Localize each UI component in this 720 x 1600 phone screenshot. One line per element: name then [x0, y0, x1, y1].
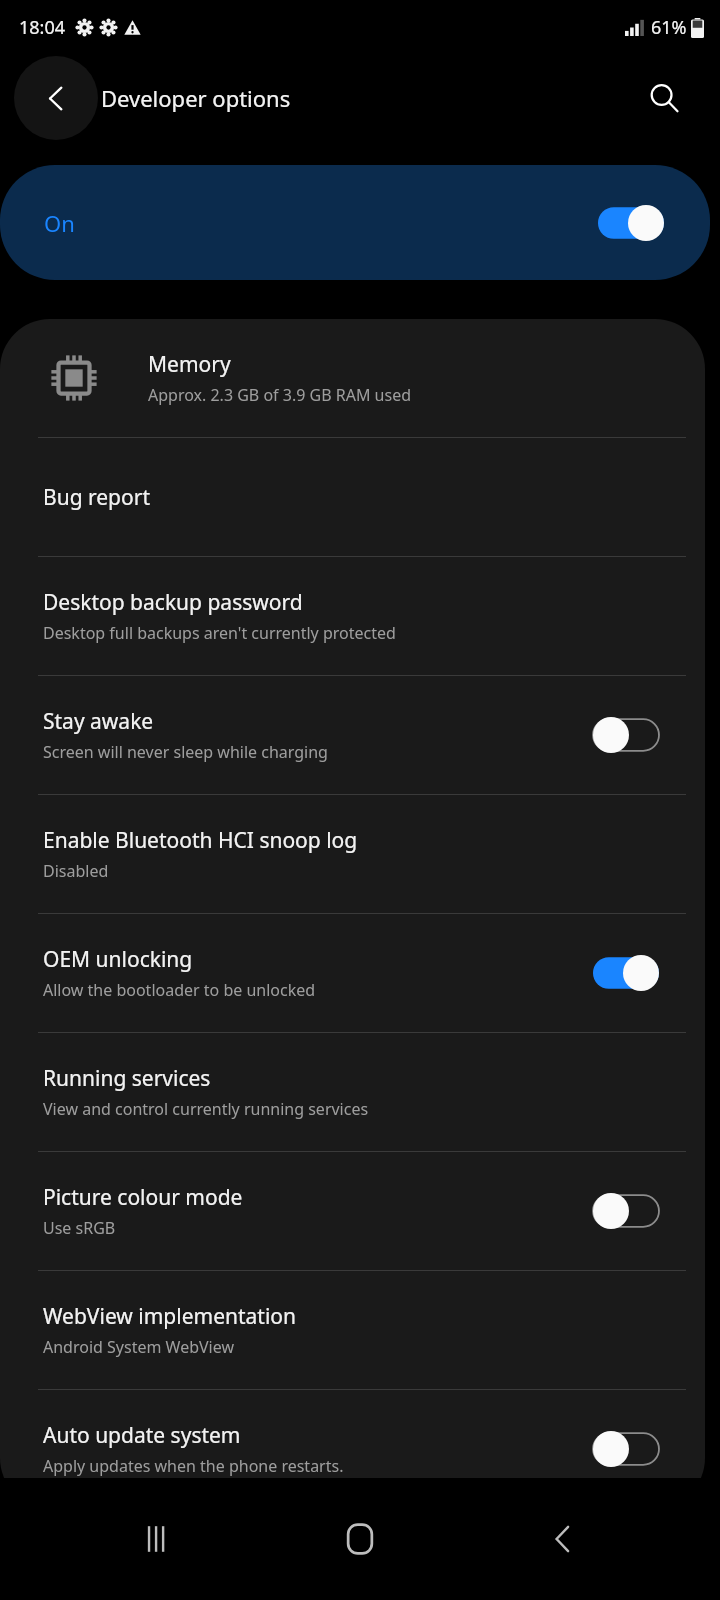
staticText: Apply updates when the phone restarts.	[43, 1455, 344, 1477]
staticText: Approx. 2.3 GB of 3.9 GB RAM used	[148, 384, 411, 406]
button[interactable]	[593, 717, 659, 753]
button[interactable]: Auto update system	[0, 1390, 705, 1508]
staticText: Desktop full backups aren't currently pr…	[43, 622, 396, 644]
staticText: Android System WebView	[43, 1336, 235, 1358]
staticText: 18:04	[19, 15, 66, 40]
staticText: Desktop backup password	[43, 588, 303, 617]
staticText: Use sRGB	[43, 1217, 116, 1239]
staticText: Allow the bootloader to be unlocked	[43, 979, 316, 1001]
staticText: Stay awake	[43, 707, 154, 736]
button[interactable]: Recent apps	[113, 1494, 203, 1584]
staticText: Auto update system	[43, 1421, 241, 1450]
staticText: WebView implementation	[43, 1302, 297, 1331]
button[interactable]: OEM unlocking	[0, 914, 705, 1032]
button[interactable]: On	[0, 165, 710, 280]
staticText: Enable Bluetooth HCI snoop log	[43, 826, 358, 855]
button[interactable]: Picture colour mode	[0, 1152, 705, 1270]
button[interactable]	[598, 205, 664, 241]
button[interactable]	[593, 1193, 659, 1229]
button[interactable]: WebView implementation	[0, 1271, 705, 1389]
staticText: View and control currently running servi…	[43, 1098, 369, 1120]
button[interactable]: Search	[636, 70, 692, 126]
staticText: Memory	[148, 350, 231, 379]
staticText: Developer options	[101, 83, 291, 113]
button[interactable]: Back	[518, 1494, 608, 1584]
button[interactable]: Back	[14, 56, 98, 140]
staticText: OEM unlocking	[43, 945, 193, 974]
button[interactable]: Running services	[0, 1033, 705, 1151]
staticText: Picture colour mode	[43, 1183, 243, 1212]
staticText: Screen will never sleep while charging	[43, 741, 328, 763]
staticText: Disabled	[43, 860, 109, 882]
staticText: On	[44, 208, 75, 238]
button[interactable]: Enable Bluetooth HCI snoop log	[0, 795, 705, 913]
button[interactable]: Desktop backup password	[0, 557, 705, 675]
button[interactable]	[593, 955, 659, 991]
button[interactable]: Home	[315, 1494, 405, 1584]
button[interactable]: Bug report	[0, 438, 705, 556]
button[interactable]: Memory	[0, 319, 705, 437]
button[interactable]: Stay awake	[0, 676, 705, 794]
staticText: Running services	[43, 1064, 211, 1093]
staticText: Bug report	[43, 483, 150, 512]
staticText: 61%	[651, 15, 687, 40]
button[interactable]	[593, 1431, 659, 1467]
